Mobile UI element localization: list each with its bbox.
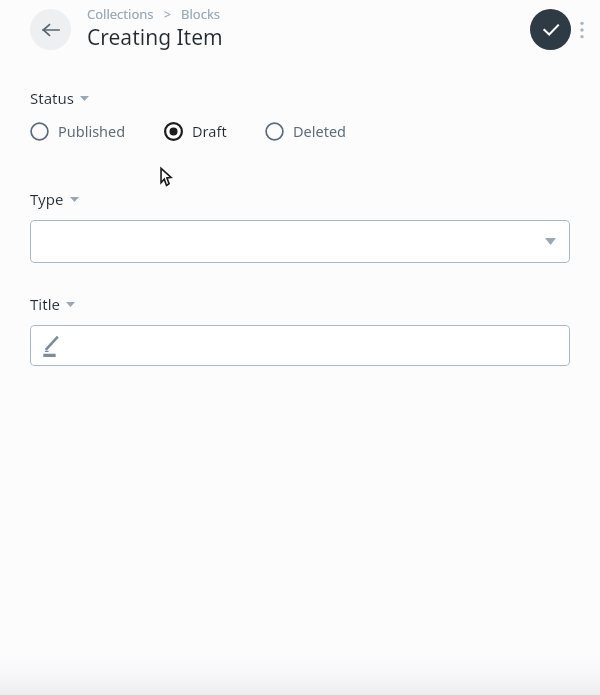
staticText: Status: [30, 88, 74, 108]
staticText: >: [164, 6, 171, 22]
button[interactable]: Blocks: [181, 5, 221, 23]
staticText: Draft: [192, 121, 227, 141]
staticText: Title: [30, 294, 60, 314]
button[interactable]: Type dropdown: [30, 220, 570, 263]
button[interactable]: More options: [568, 10, 596, 50]
staticText: Published: [58, 121, 126, 141]
button[interactable]: Collections: [87, 5, 154, 23]
button[interactable]: Confirm: [530, 9, 571, 50]
staticText: Deleted: [293, 121, 347, 141]
staticText: Creating Item: [87, 23, 223, 52]
button[interactable]: Deleted: [265, 119, 347, 143]
button[interactable]: Title input: [30, 325, 570, 366]
button[interactable]: Draft: [164, 119, 227, 143]
button[interactable]: Back: [30, 9, 71, 50]
button[interactable]: Published: [30, 119, 126, 143]
staticText: Type: [30, 189, 64, 209]
